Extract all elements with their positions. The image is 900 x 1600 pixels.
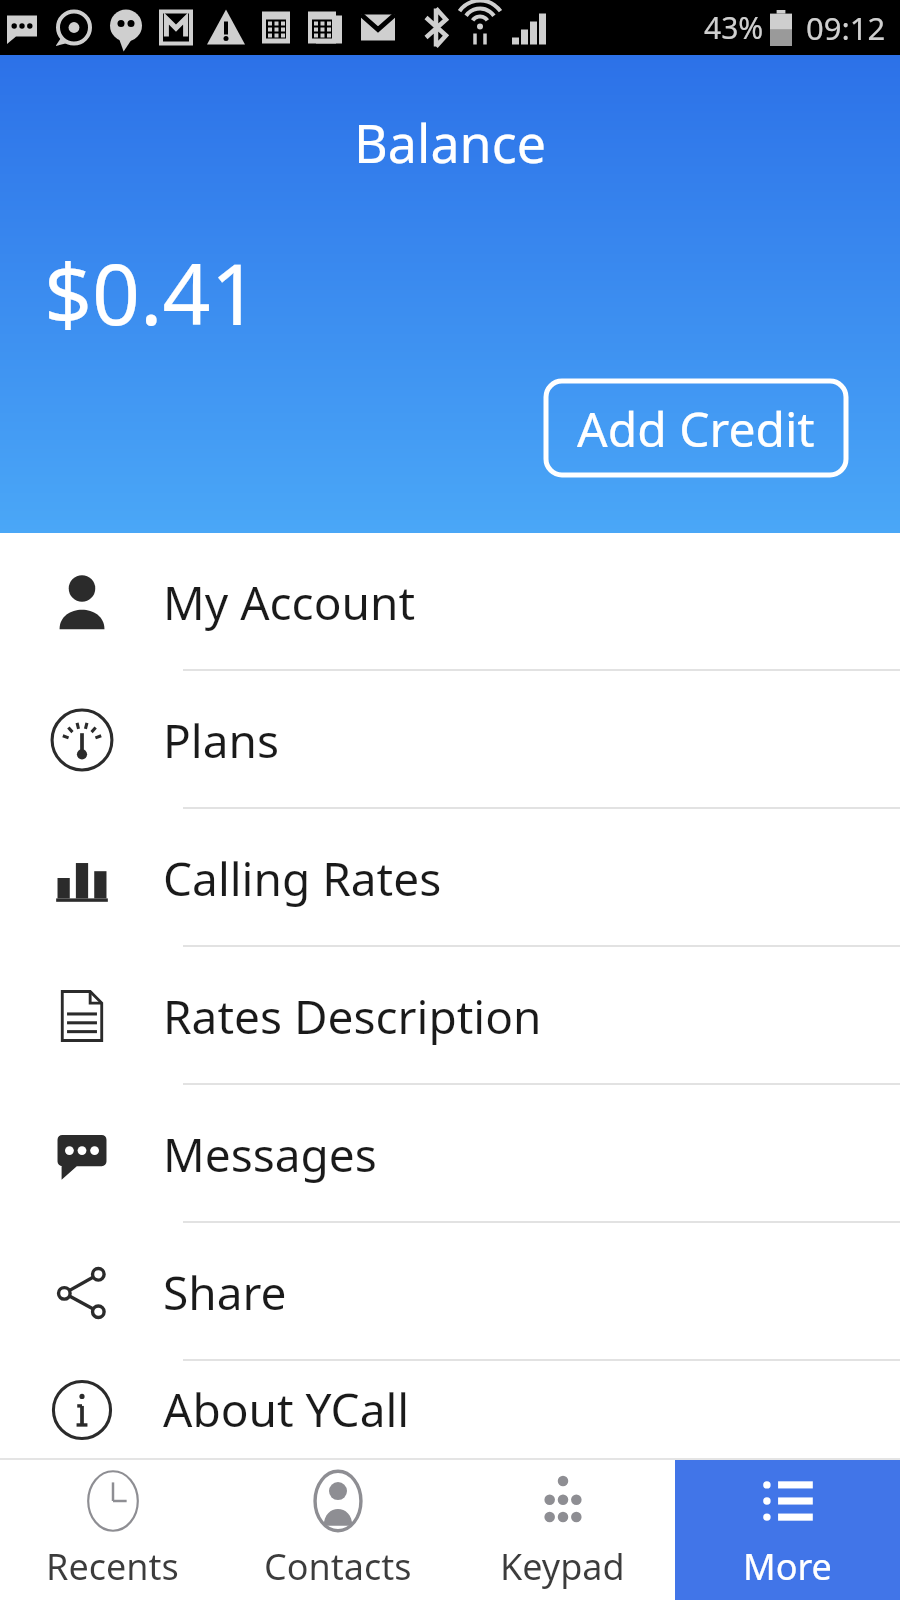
staticText: 43% <box>704 7 764 48</box>
staticText: Share <box>163 1261 287 1324</box>
staticText: Keypad <box>500 1542 625 1591</box>
staticText: More <box>743 1542 832 1591</box>
staticText: Plans <box>163 709 279 772</box>
staticText: 09:12 <box>806 7 886 49</box>
button[interactable]: Keypad <box>450 1460 675 1600</box>
button[interactable]: Recents <box>0 1460 225 1600</box>
button[interactable]: More <box>675 1460 900 1600</box>
staticText: About YCall <box>163 1378 410 1441</box>
staticText: Recents <box>46 1542 179 1591</box>
staticText: Calling Rates <box>163 847 442 910</box>
button[interactable]: My Account <box>0 533 900 671</box>
button[interactable]: Share <box>0 1223 900 1361</box>
button[interactable]: Calling Rates <box>0 809 900 947</box>
staticText: $0.41 <box>44 235 259 349</box>
staticText: Messages <box>163 1123 377 1186</box>
button[interactable]: Plans <box>0 671 900 809</box>
staticText: Add Credit <box>577 396 815 461</box>
staticText: Rates Description <box>163 985 542 1048</box>
staticText: My Account <box>163 571 415 634</box>
button[interactable]: About YCall <box>0 1361 900 1458</box>
button[interactable]: Messages <box>0 1085 900 1223</box>
staticText: Contacts <box>264 1542 412 1591</box>
button[interactable]: Rates Description <box>0 947 900 1085</box>
button[interactable]: Add Credit <box>543 378 849 478</box>
button[interactable]: Contacts <box>225 1460 450 1600</box>
staticText: Balance <box>354 107 546 178</box>
